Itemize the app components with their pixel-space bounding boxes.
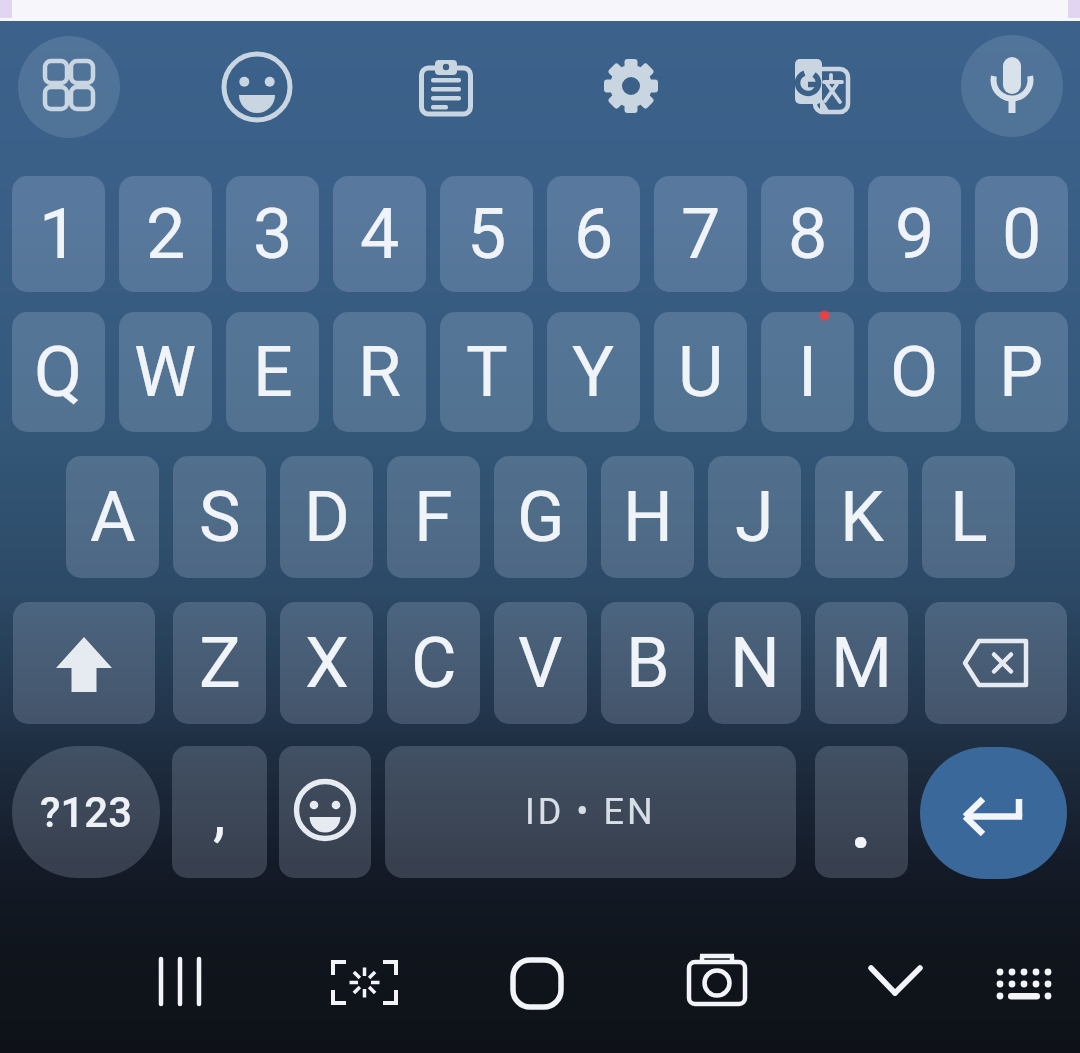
button[interactable]: 3 [226, 176, 319, 292]
button[interactable] [920, 747, 1067, 879]
button[interactable]: U [654, 312, 747, 432]
staticText: F [414, 476, 453, 558]
button[interactable]: N [708, 602, 801, 724]
staticText: Q [34, 331, 83, 413]
staticText: ID • EN [525, 791, 656, 833]
button[interactable] [677, 942, 757, 1022]
button[interactable]: 1 [12, 176, 105, 292]
staticText: G [517, 476, 565, 558]
button[interactable]: C [387, 602, 480, 724]
staticText: B [626, 622, 670, 704]
staticText: 3 [253, 193, 293, 275]
staticText: E [253, 331, 293, 413]
staticText: 4 [360, 193, 400, 275]
staticText: U [678, 331, 724, 413]
button[interactable]: X [280, 602, 373, 724]
button[interactable]: A [66, 456, 159, 578]
button[interactable]: I [761, 312, 854, 432]
staticText: Y [572, 331, 615, 413]
button[interactable]: . [815, 746, 908, 878]
staticText: X [305, 622, 349, 704]
button[interactable] [984, 944, 1064, 1024]
staticText: W [134, 331, 197, 413]
staticText: 1 [39, 193, 79, 275]
staticText: 2 [146, 193, 186, 275]
button[interactable] [776, 41, 866, 131]
button[interactable]: P [975, 312, 1068, 432]
button[interactable]: T [440, 312, 533, 432]
staticText: , [213, 775, 226, 850]
button[interactable] [401, 42, 491, 132]
button[interactable]: S [173, 456, 266, 578]
button[interactable]: M [815, 602, 908, 724]
button[interactable]: H [601, 456, 694, 578]
button[interactable]: R [333, 312, 426, 432]
staticText: M [831, 622, 893, 704]
button[interactable]: , [172, 746, 267, 878]
button[interactable]: 8 [761, 176, 854, 292]
button[interactable]: ?123 [12, 746, 160, 878]
button[interactable]: 2 [119, 176, 212, 292]
staticText: 6 [574, 193, 614, 275]
button[interactable]: 6 [547, 176, 640, 292]
button[interactable]: D [280, 456, 373, 578]
staticText: Z [199, 622, 241, 704]
staticText: P [999, 331, 1044, 413]
button[interactable] [140, 941, 220, 1021]
staticText: L [950, 476, 988, 558]
button[interactable] [279, 746, 371, 878]
staticText: D [304, 476, 350, 558]
staticText: A [90, 476, 136, 558]
button[interactable] [497, 943, 577, 1023]
staticText: . [848, 754, 875, 871]
button[interactable]: 4 [333, 176, 426, 292]
button[interactable] [925, 602, 1067, 724]
button[interactable]: Z [173, 602, 266, 724]
button[interactable]: Y [547, 312, 640, 432]
button[interactable]: K [815, 456, 908, 578]
button[interactable] [324, 942, 404, 1022]
button[interactable]: 9 [868, 176, 961, 292]
button[interactable]: G [494, 456, 587, 578]
staticText: ?123 [40, 788, 133, 837]
button[interactable] [961, 35, 1063, 137]
staticText: H [623, 476, 673, 558]
button[interactable]: J [708, 456, 801, 578]
staticText: 5 [467, 193, 507, 275]
button[interactable]: W [119, 312, 212, 432]
button[interactable] [586, 41, 676, 131]
button[interactable]: F [387, 456, 480, 578]
staticText: 8 [788, 193, 828, 275]
staticText: C [411, 622, 457, 704]
button[interactable] [18, 36, 120, 138]
staticText: K [840, 476, 884, 558]
staticText: O [890, 331, 939, 413]
button[interactable]: 7 [654, 176, 747, 292]
staticText: I [798, 331, 818, 413]
button[interactable]: Q [12, 312, 105, 432]
button[interactable]: 0 [975, 176, 1068, 292]
button[interactable]: B [601, 602, 694, 724]
staticText: J [735, 476, 774, 558]
staticText: 9 [895, 193, 935, 275]
staticText: T [466, 331, 508, 413]
button[interactable]: V [494, 602, 587, 724]
staticText: R [358, 331, 402, 413]
button[interactable]: ID • EN [385, 746, 796, 878]
button[interactable] [13, 602, 155, 724]
button[interactable] [212, 42, 302, 132]
button[interactable]: 5 [440, 176, 533, 292]
button[interactable]: L [922, 456, 1015, 578]
staticText: V [518, 622, 563, 704]
button[interactable] [855, 941, 935, 1021]
staticText: 7 [681, 193, 721, 275]
staticText: S [199, 476, 241, 558]
staticText: N [730, 622, 780, 704]
button[interactable]: O [868, 312, 961, 432]
button[interactable]: E [226, 312, 319, 432]
staticText: 0 [1002, 193, 1042, 275]
